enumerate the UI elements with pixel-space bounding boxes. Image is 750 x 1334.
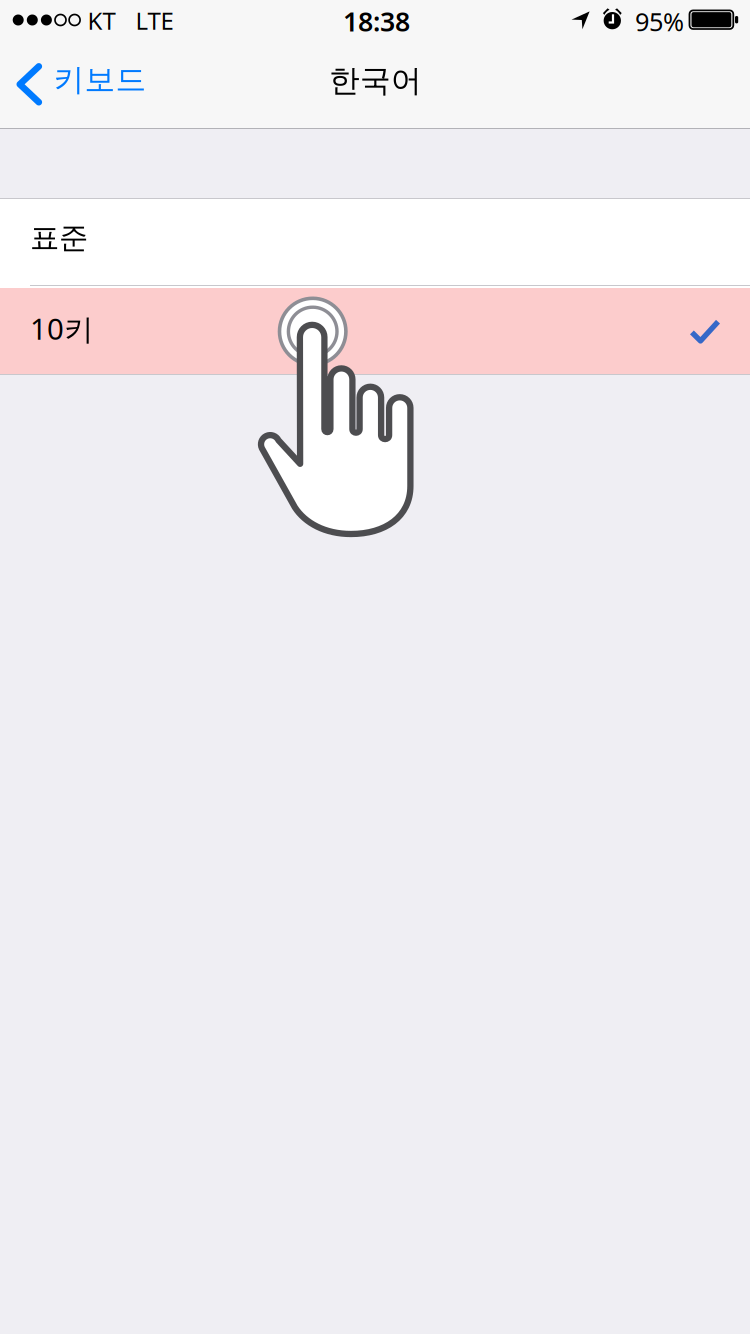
button[interactable]: 표준 (0, 199, 750, 288)
staticText: 한국어 (329, 62, 422, 100)
staticText: 키보드 (53, 61, 146, 99)
button[interactable]: 키보드 (0, 40, 158, 128)
staticText: 95% (635, 4, 684, 38)
staticText: 10키 (30, 309, 93, 348)
staticText: KT (87, 4, 115, 36)
staticText: LTE (135, 4, 173, 36)
staticText: 표준 (30, 220, 88, 256)
staticText: 18:38 (343, 3, 410, 39)
button[interactable]: 10키 (0, 288, 750, 374)
